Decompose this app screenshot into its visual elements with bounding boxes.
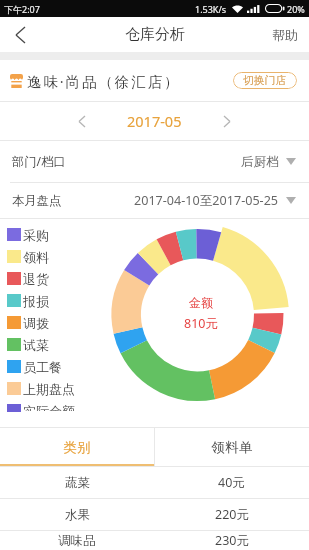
- staticText: 上期盘点: [23, 381, 75, 397]
- staticText: 逸味·尚品（徐汇店）: [27, 71, 181, 91]
- staticText: 后厨档: [241, 154, 279, 170]
- button[interactable]: 部门/档口: [0, 141, 309, 182]
- staticText: 金额: [189, 295, 213, 310]
- staticText: 仓库分析: [125, 25, 185, 44]
- staticText: 员工餐: [23, 359, 62, 375]
- staticText: 40元: [218, 474, 245, 491]
- staticText: 采购: [23, 227, 49, 243]
- staticText: 调拨: [23, 315, 49, 331]
- button[interactable]: 领料单: [155, 428, 309, 466]
- staticText: 领料: [23, 249, 49, 265]
- button[interactable]: 本月盘点: [0, 183, 309, 218]
- staticText: 类别: [63, 439, 91, 456]
- staticText: 帮助: [272, 27, 298, 43]
- button[interactable]: 帮助: [261, 17, 309, 52]
- staticText: 20%: [287, 3, 305, 15]
- staticText: 230元: [215, 532, 249, 549]
- staticText: 退货: [23, 271, 49, 287]
- staticText: 实际金额: [23, 403, 75, 411]
- button[interactable]: Next month: [215, 102, 239, 140]
- staticText: 领料单: [211, 439, 253, 456]
- staticText: 报损: [23, 293, 49, 309]
- staticText: 切换门店: [243, 74, 287, 88]
- button[interactable]: Previous month: [70, 102, 94, 140]
- button[interactable]: Back: [0, 17, 40, 52]
- button[interactable]: 类别: [0, 428, 154, 466]
- button[interactable]: 切换门店: [233, 72, 297, 89]
- staticText: 本月盘点: [12, 193, 62, 208]
- staticText: 部门/档口: [12, 153, 66, 170]
- staticText: 220元: [215, 506, 249, 523]
- staticText: 2017-05: [127, 111, 182, 131]
- staticText: 蔬菜: [65, 475, 90, 491]
- staticText: 2017-04-10至2017-05-25: [134, 192, 279, 209]
- staticText: 1.53K/s: [195, 3, 227, 15]
- staticText: 试菜: [23, 337, 49, 353]
- staticText: 水果: [65, 507, 90, 523]
- staticText: 810元: [184, 315, 218, 332]
- staticText: 调味品: [58, 533, 96, 549]
- staticText: 下午2:07: [4, 3, 40, 15]
